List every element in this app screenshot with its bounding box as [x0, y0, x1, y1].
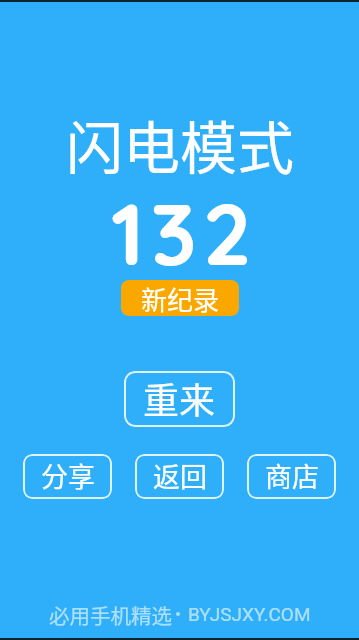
staticText: 返回: [153, 456, 207, 495]
staticText: BYJSJXY.COM: [188, 603, 311, 625]
staticText: 闪电模式: [66, 103, 294, 186]
staticText: 商店: [265, 456, 319, 495]
staticText: 分享: [41, 456, 95, 495]
staticText: 重来: [143, 372, 216, 424]
button[interactable]: 分享: [23, 454, 112, 499]
button[interactable]: 重来: [124, 371, 235, 427]
staticText: 新纪录: [141, 280, 220, 316]
button[interactable]: 返回: [135, 454, 224, 499]
button[interactable]: 商店: [247, 454, 336, 499]
staticText: 必用手机精选: [49, 600, 172, 630]
button[interactable]: 新纪录: [121, 280, 239, 316]
staticText: 132: [111, 179, 258, 287]
